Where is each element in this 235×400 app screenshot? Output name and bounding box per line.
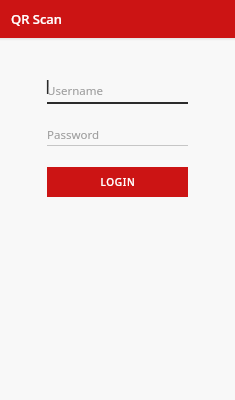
button[interactable]: LOGIN bbox=[47, 167, 188, 197]
staticText: LOGIN bbox=[100, 175, 136, 189]
button[interactable]: Password bbox=[47, 125, 188, 145]
staticText: Password bbox=[47, 127, 100, 143]
staticText: Username bbox=[47, 83, 103, 99]
button[interactable]: Username bbox=[47, 80, 188, 102]
staticText: QR Scan bbox=[11, 10, 62, 28]
